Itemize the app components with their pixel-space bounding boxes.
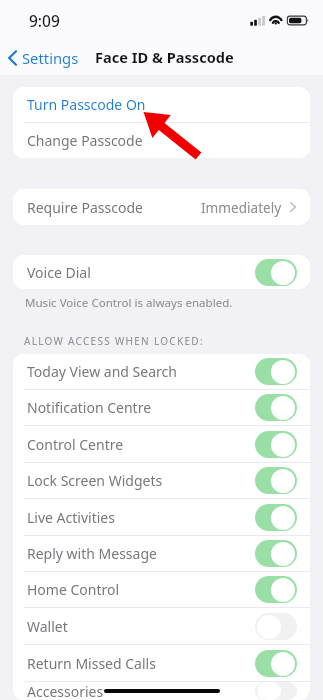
- staticText: Lock Screen Widgets: [27, 471, 163, 490]
- button[interactable]: Reply with Message: [13, 536, 310, 571]
- staticText: Accessories: [27, 682, 104, 700]
- staticText: Change Passcode: [27, 131, 143, 150]
- button[interactable]: Wallet: [13, 608, 310, 644]
- button[interactable]: Toggle on: [255, 431, 297, 458]
- staticText: Face ID & Passcode: [95, 47, 234, 67]
- button[interactable]: Toggle on: [255, 650, 297, 677]
- button[interactable]: Today View and Search: [13, 354, 310, 389]
- staticText: Live Activities: [27, 508, 115, 527]
- button[interactable]: Turn Passcode On: [13, 87, 310, 122]
- staticText: Control Centre: [27, 435, 124, 454]
- button[interactable]: Lock Screen Widgets: [13, 463, 310, 498]
- staticText: 9:09: [29, 10, 60, 31]
- button[interactable]: Toggle off: [255, 682, 297, 700]
- button[interactable]: Accessories: [13, 682, 310, 700]
- staticText: Music Voice Control is always enabled.: [25, 295, 233, 311]
- button[interactable]: Toggle on: [255, 358, 297, 385]
- staticText: Reply with Message: [27, 544, 157, 563]
- button[interactable]: Toggle on: [255, 540, 297, 567]
- staticText: Wallet: [27, 617, 68, 636]
- button[interactable]: Toggle on: [255, 394, 297, 421]
- button[interactable]: Toggle on: [255, 576, 297, 603]
- staticText: Voice Dial: [27, 263, 91, 282]
- staticText: Require Passcode: [27, 198, 143, 217]
- button[interactable]: Return Missed Calls: [13, 645, 310, 681]
- button[interactable]: Settings: [5, 44, 81, 72]
- button[interactable]: Control Centre: [13, 426, 310, 462]
- button[interactable]: Change Passcode: [13, 123, 310, 158]
- staticText: Notification Centre: [27, 398, 152, 417]
- button[interactable]: Notification Centre: [13, 390, 310, 425]
- staticText: Today View and Search: [27, 362, 177, 381]
- staticText: Home Control: [27, 580, 120, 599]
- staticText: Settings: [22, 48, 79, 68]
- button[interactable]: Voice Dial: [13, 255, 310, 289]
- staticText: Immediately: [201, 198, 282, 217]
- button[interactable]: Toggle on: [255, 259, 297, 286]
- button[interactable]: Home Control: [13, 572, 310, 607]
- staticText: ALLOW ACCESS WHEN LOCKED:: [24, 334, 204, 348]
- button[interactable]: Toggle on: [255, 467, 297, 494]
- button[interactable]: Toggle on: [255, 504, 297, 531]
- button[interactable]: Live Activities: [13, 499, 310, 535]
- button[interactable]: Require Passcode: [13, 189, 310, 225]
- staticText: Return Missed Calls: [27, 654, 156, 673]
- staticText: Turn Passcode On: [27, 95, 146, 114]
- button[interactable]: Toggle off: [255, 613, 297, 640]
